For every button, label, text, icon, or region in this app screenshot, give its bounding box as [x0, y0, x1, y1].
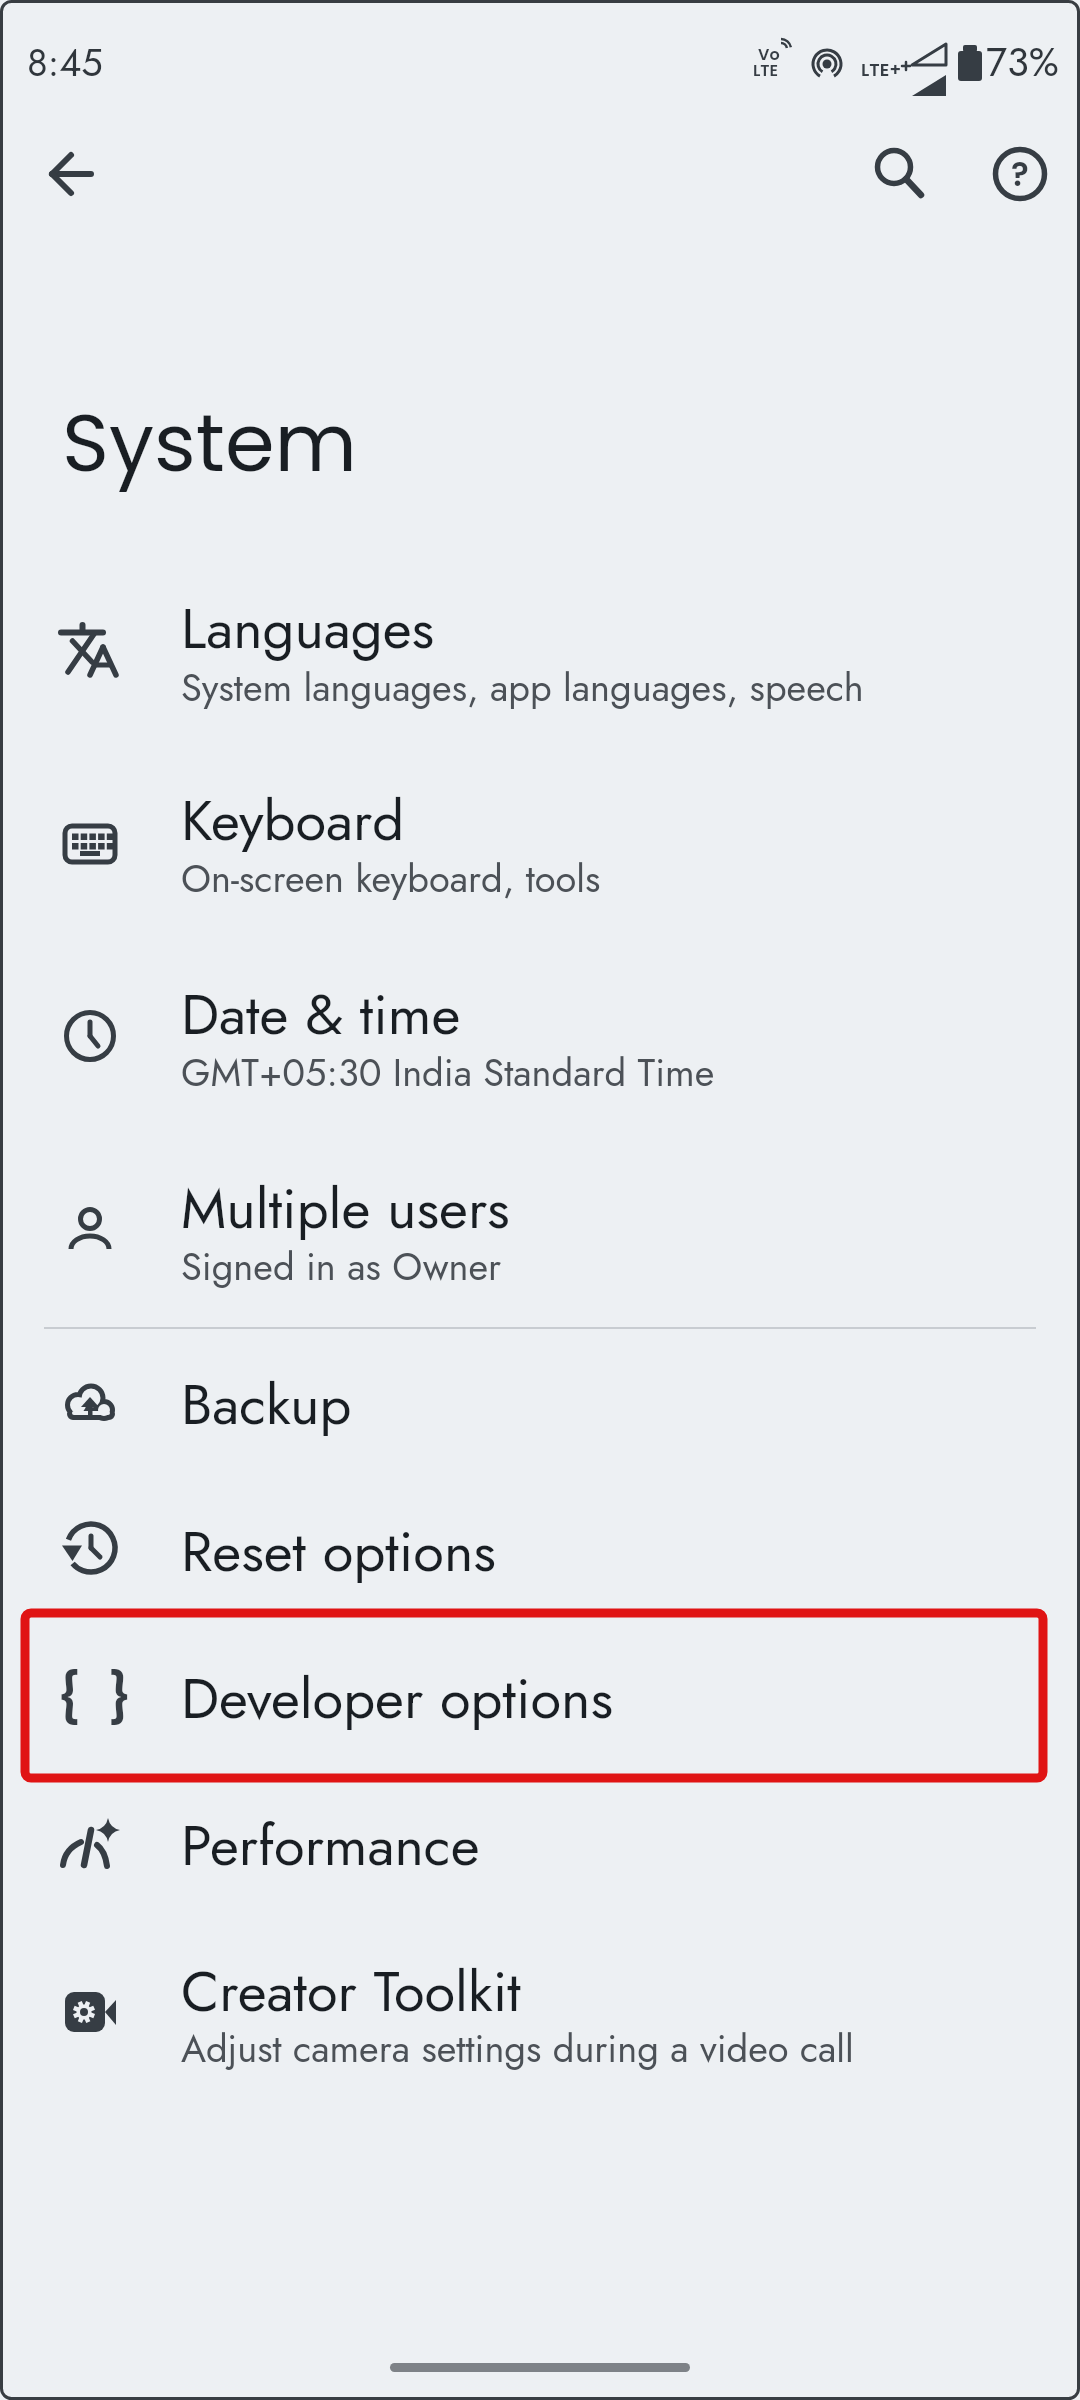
- staticText: Multiple users: [181, 1168, 510, 1249]
- staticText: Reset options: [181, 1511, 496, 1592]
- button[interactable]: Multiple users: [0, 1146, 1080, 1306]
- staticText: 8:45: [27, 35, 103, 90]
- button[interactable]: Keyboard: [0, 760, 1080, 920]
- staticText: LTE: [753, 59, 779, 81]
- staticText: ?: [1011, 151, 1029, 197]
- staticText: LTE+: [861, 57, 902, 82]
- staticText: Languages: [181, 588, 435, 669]
- button[interactable]: [862, 136, 926, 200]
- staticText: GMT+05:30 India Standard Time: [181, 1045, 715, 1100]
- staticText: Performance: [181, 1805, 480, 1886]
- staticText: 73%: [986, 33, 1059, 91]
- staticText: Keyboard: [181, 780, 405, 861]
- button[interactable]: Developer options: [0, 1625, 1080, 1771]
- button[interactable]: [38, 142, 102, 206]
- staticText: Backup: [181, 1364, 352, 1445]
- staticText: Developer options: [181, 1658, 613, 1739]
- staticText: Adjust camera settings during a video ca…: [181, 2021, 854, 2076]
- staticText: On-screen keyboard, tools: [181, 851, 601, 906]
- staticText: { }: [56, 1663, 140, 1733]
- button[interactable]: Reset options: [0, 1479, 1080, 1625]
- staticText: Creator Toolkit: [181, 1951, 521, 2032]
- staticText: System languages, app languages, speech: [181, 660, 864, 715]
- staticText: Date & time: [181, 974, 461, 1055]
- button[interactable]: Date & time: [0, 952, 1080, 1112]
- staticText: System: [62, 387, 357, 499]
- button[interactable]: Languages: [0, 565, 1080, 735]
- staticText: Vo: [758, 43, 780, 65]
- staticText: Signed in as Owner: [181, 1239, 502, 1294]
- button[interactable]: ?: [988, 142, 1052, 206]
- button[interactable]: Creator Toolkit: [0, 1919, 1080, 2089]
- button[interactable]: Performance: [0, 1773, 1080, 1919]
- button[interactable]: Backup: [0, 1332, 1080, 1478]
